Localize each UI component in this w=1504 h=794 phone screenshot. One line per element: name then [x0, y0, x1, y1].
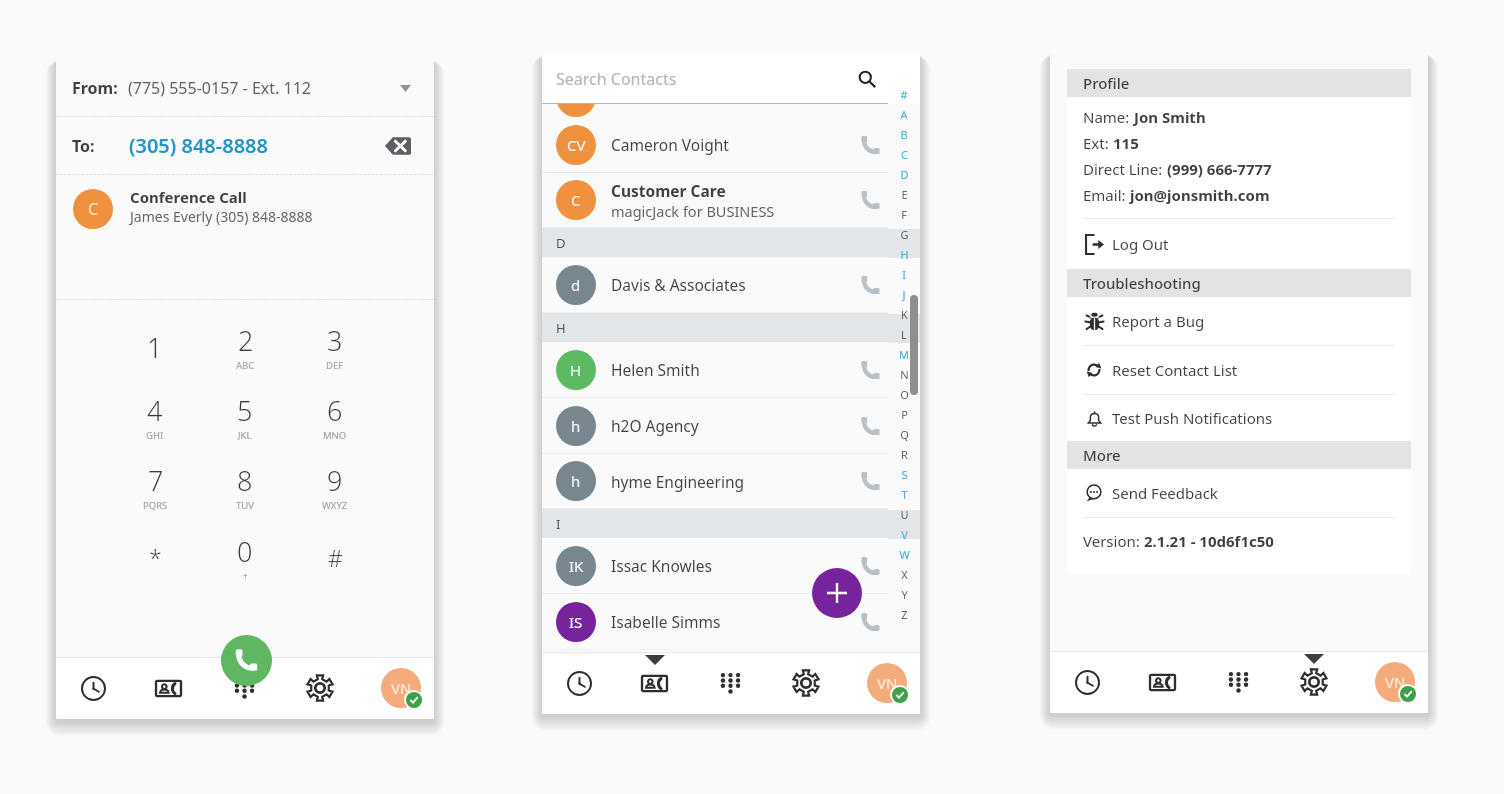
- button[interactable]: Call Issac Knowles: [856, 552, 884, 580]
- button[interactable]: 5: [200, 386, 290, 456]
- button[interactable]: Test Push Notifications: [1083, 395, 1411, 441]
- button[interactable]: 2: [200, 316, 290, 386]
- button[interactable]: Profile: [381, 668, 421, 708]
- button[interactable]: Call hyme Engineering: [856, 467, 884, 495]
- staticText: Conference Call: [130, 187, 247, 207]
- staticText: E: [901, 187, 908, 202]
- button[interactable]: Settings: [768, 652, 844, 714]
- button[interactable]: Profile: [1375, 662, 1415, 702]
- button[interactable]: H: [542, 342, 888, 397]
- button[interactable]: Send Feedback: [1083, 469, 1411, 517]
- staticText: TUV: [236, 499, 254, 512]
- staticText: 2.1.21 - 10d6f1c50: [1144, 531, 1274, 551]
- button[interactable]: C: [56, 175, 434, 229]
- staticText: Davis & Associates: [611, 274, 746, 295]
- button[interactable]: Log Out: [1083, 219, 1411, 269]
- button[interactable]: Reset Contact List: [1083, 346, 1411, 394]
- button[interactable]: Search Contacts: [542, 55, 920, 103]
- staticText: L: [901, 327, 907, 342]
- button[interactable]: Call: [221, 635, 272, 686]
- button[interactable]: Call Davis & Associates: [856, 271, 884, 299]
- staticText: JKL: [238, 429, 252, 442]
- button[interactable]: Add contact: [812, 568, 862, 618]
- button[interactable]: IK: [542, 538, 888, 593]
- staticText: +: [243, 570, 248, 581]
- staticText: 4: [147, 392, 163, 429]
- button[interactable]: Call Customer Care: [856, 186, 884, 214]
- button[interactable]: C: [542, 173, 888, 227]
- staticText: K: [901, 307, 908, 322]
- button[interactable]: 3: [290, 316, 380, 386]
- staticText: 3: [327, 322, 343, 359]
- staticText: Cameron Voight: [611, 134, 729, 155]
- button[interactable]: Recents: [56, 657, 131, 719]
- staticText: (775) 555-0157 - Ext. 112: [128, 77, 311, 99]
- staticText: (305) 848-8888: [129, 132, 268, 159]
- staticText: A: [900, 107, 908, 122]
- button[interactable]: Settings: [282, 657, 358, 719]
- staticText: S: [901, 467, 908, 482]
- staticText: VN: [1385, 672, 1406, 692]
- staticText: D: [900, 167, 909, 182]
- button[interactable]: #: [290, 526, 380, 596]
- staticText: C: [901, 147, 908, 162]
- staticText: Z: [901, 607, 908, 622]
- button[interactable]: IS: [542, 594, 888, 649]
- button[interactable]: Recents: [1050, 651, 1125, 713]
- staticText: H: [570, 360, 582, 380]
- button[interactable]: Alphabet index: [888, 84, 920, 624]
- button[interactable]: Settings: [1276, 651, 1352, 713]
- button[interactable]: From:: [56, 60, 434, 116]
- button[interactable]: Dialpad: [206, 657, 282, 719]
- staticText: B: [900, 127, 908, 142]
- staticText: Helen Smith: [611, 359, 700, 380]
- staticText: P: [901, 407, 908, 422]
- staticText: I: [902, 267, 906, 282]
- button[interactable]: 7: [110, 456, 200, 526]
- staticText: jon@jonsmith.com: [1130, 185, 1270, 205]
- button[interactable]: Recents: [542, 652, 617, 714]
- button[interactable]: Search: [855, 67, 879, 91]
- button[interactable]: h: [542, 454, 888, 508]
- button[interactable]: Backspace: [381, 129, 415, 163]
- button[interactable]: Profile: [867, 663, 907, 703]
- button[interactable]: 9: [290, 456, 380, 526]
- button[interactable]: *: [110, 526, 200, 596]
- button[interactable]: Contacts: [131, 657, 206, 719]
- button[interactable]: 1: [110, 316, 200, 386]
- staticText: More: [1083, 445, 1121, 465]
- button[interactable]: CV: [542, 117, 888, 172]
- button[interactable]: 4: [110, 386, 200, 456]
- staticText: Reset Contact List: [1112, 360, 1238, 380]
- button[interactable]: Call Cameron Voight: [856, 131, 884, 159]
- staticText: Ext:: [1083, 133, 1113, 153]
- staticText: CV: [567, 135, 586, 155]
- button[interactable]: Call Helen Smith: [856, 356, 884, 384]
- button[interactable]: Call h2O Agency: [856, 412, 884, 440]
- staticText: IS: [569, 612, 583, 632]
- staticText: V: [901, 527, 908, 542]
- staticText: Direct Line:: [1083, 159, 1167, 179]
- button[interactable]: Contacts: [617, 652, 692, 714]
- staticText: I: [556, 515, 561, 533]
- button[interactable]: h: [542, 398, 888, 453]
- staticText: PQRS: [143, 499, 168, 512]
- button[interactable]: 0: [200, 526, 290, 596]
- staticText: 8: [237, 462, 253, 499]
- staticText: 0: [237, 533, 253, 570]
- staticText: Test Push Notifications: [1112, 408, 1273, 428]
- button[interactable]: Dialpad: [692, 652, 768, 714]
- staticText: 5: [237, 392, 253, 429]
- button[interactable]: Contacts: [1125, 651, 1200, 713]
- staticText: #: [328, 542, 343, 573]
- button[interactable]: Dialpad: [1200, 651, 1276, 713]
- staticText: Q: [900, 427, 909, 442]
- button[interactable]: Report a Bug: [1083, 297, 1411, 345]
- button[interactable]: Call Isabelle Simms: [856, 608, 884, 636]
- staticText: IK: [569, 556, 584, 576]
- button[interactable]: 8: [200, 456, 290, 526]
- staticText: O: [900, 387, 909, 402]
- button[interactable]: d: [542, 257, 888, 312]
- button[interactable]: 6: [290, 386, 380, 456]
- staticText: GHI: [146, 429, 164, 442]
